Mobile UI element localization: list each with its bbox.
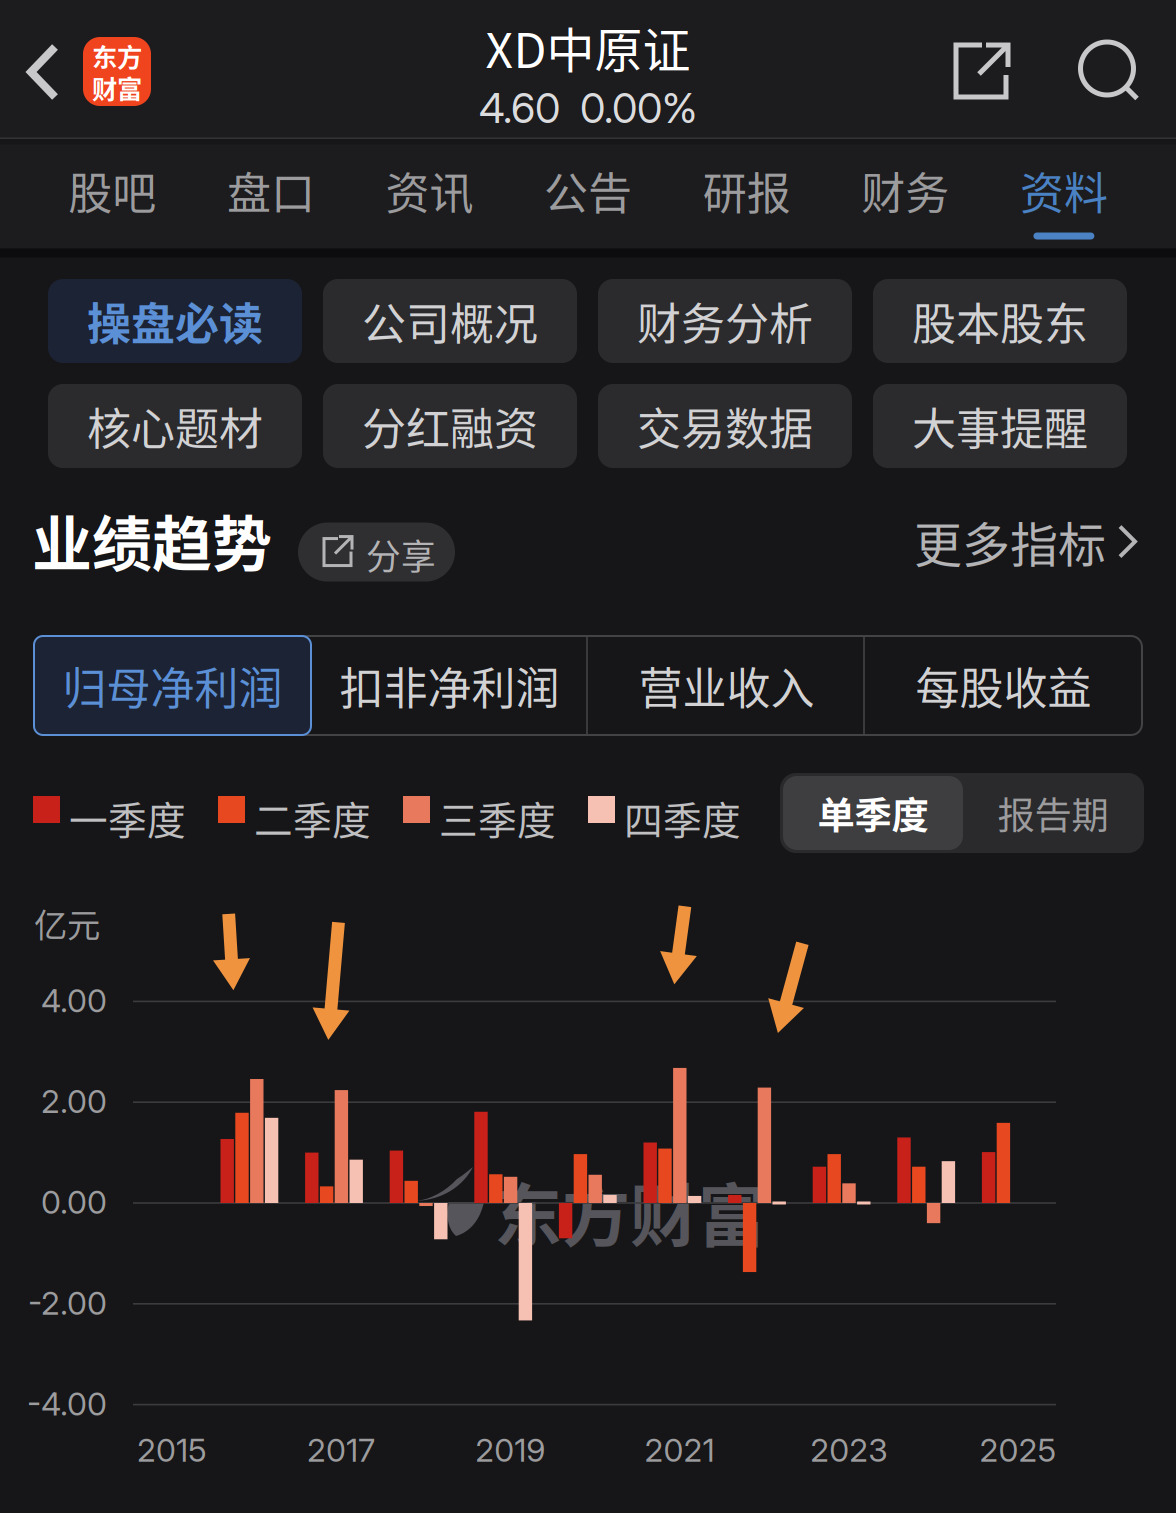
button[interactable]: 交易数据 [598, 384, 852, 468]
staticText: 单季度 [817, 786, 928, 840]
staticText: 财富 [92, 69, 142, 106]
button[interactable]: 盘口 [192, 144, 350, 248]
button[interactable]: Back [0, 22, 86, 122]
staticText: 扣非净利润 [339, 654, 559, 717]
button[interactable]: Share [932, 21, 1032, 121]
button[interactable]: 归母净利润 [34, 636, 311, 735]
button[interactable]: 分享 [298, 523, 455, 582]
staticText: -2.00 [28, 1284, 107, 1322]
button[interactable]: 操盘必读 [48, 279, 302, 363]
staticText: 资讯 [385, 159, 473, 222]
button[interactable]: 更多指标 [914, 511, 1138, 573]
button[interactable]: 大事提醒 [873, 384, 1127, 468]
staticText: 交易数据 [637, 394, 813, 458]
staticText: 财务分析 [637, 289, 813, 353]
staticText: 公告 [544, 159, 632, 222]
button[interactable]: East Money logo [83, 37, 151, 106]
button[interactable]: 报告期 [963, 776, 1143, 850]
button[interactable]: 股本股东 [873, 279, 1127, 363]
button[interactable]: 单季度 [783, 776, 963, 850]
button[interactable]: 资讯 [350, 144, 509, 248]
staticText: 东方 [92, 37, 142, 74]
staticText: 每股收益 [915, 654, 1091, 717]
staticText: -4.00 [27, 1384, 107, 1423]
staticText: 公司概况 [362, 289, 538, 353]
staticText: 四季度 [624, 790, 741, 846]
button[interactable]: 资料 [985, 144, 1143, 248]
button[interactable]: 每股收益 [865, 636, 1142, 735]
staticText: 业绩趋势 [32, 497, 272, 583]
button[interactable]: 股吧 [33, 144, 192, 248]
staticText: 归母净利润 [62, 654, 282, 717]
staticText: 2025 [979, 1431, 1056, 1469]
button[interactable]: 分红融资 [323, 384, 577, 468]
button[interactable]: Search [1056, 17, 1160, 121]
staticText: 0.00 [41, 1183, 107, 1221]
staticText: 股本股东 [912, 289, 1088, 353]
staticText: 分红融资 [362, 394, 538, 458]
staticText: XD中原证 [485, 12, 690, 82]
staticText: 亿元 [34, 899, 100, 947]
staticText: 三季度 [439, 790, 556, 846]
staticText: 盘口 [227, 159, 315, 222]
staticText: 4.60 0.00% [479, 83, 697, 133]
button[interactable]: 公司概况 [323, 279, 577, 363]
staticText: 2.00 [41, 1082, 107, 1121]
staticText: 2019 [475, 1431, 545, 1469]
staticText: 2021 [644, 1431, 714, 1469]
staticText: 二季度 [254, 790, 371, 846]
staticText: 报告期 [997, 786, 1108, 840]
staticText: 2023 [810, 1431, 887, 1469]
staticText: 核心题材 [87, 394, 263, 458]
button[interactable]: 营业收入 [588, 636, 865, 735]
button[interactable]: 财务分析 [598, 279, 852, 363]
staticText: 2015 [137, 1431, 207, 1469]
staticText: 2017 [307, 1431, 375, 1469]
staticText: 操盘必读 [87, 289, 263, 353]
staticText: 财务 [861, 159, 949, 222]
staticText: 4.00 [41, 981, 107, 1020]
staticText: 股吧 [68, 159, 156, 222]
staticText: 大事提醒 [912, 394, 1088, 458]
button[interactable]: 公告 [509, 144, 667, 248]
staticText: 营业收入 [638, 654, 814, 717]
staticText: 东方财富 [494, 1162, 766, 1260]
staticText: 研报 [703, 159, 791, 222]
staticText: 资料 [1020, 159, 1108, 222]
button[interactable]: 核心题材 [48, 384, 302, 468]
staticText: 一季度 [69, 790, 186, 846]
staticText: 更多指标 [914, 507, 1106, 576]
button[interactable]: 扣非净利润 [311, 636, 588, 735]
staticText: 分享 [366, 530, 436, 580]
button[interactable]: 研报 [667, 144, 826, 248]
button[interactable]: 财务 [826, 144, 985, 248]
